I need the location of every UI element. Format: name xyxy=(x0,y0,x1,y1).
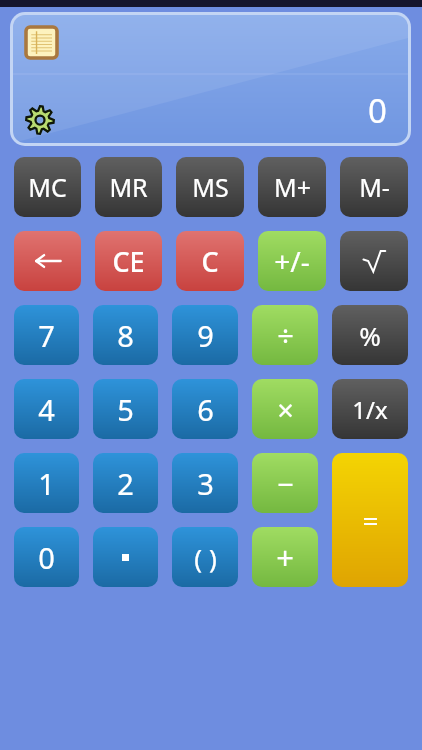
button[interactable]: 3 xyxy=(172,453,238,513)
button[interactable]: 4 xyxy=(14,379,79,439)
button[interactable]: − xyxy=(252,453,318,513)
staticText: 0 xyxy=(368,88,387,133)
button[interactable]: Settings xyxy=(25,105,55,135)
staticText: 2 xyxy=(117,464,134,503)
button[interactable]: Decimal point xyxy=(93,527,158,587)
staticText: M- xyxy=(359,170,390,204)
staticText: MC xyxy=(28,170,67,204)
button[interactable]: +/- xyxy=(258,231,326,291)
staticText: ( ) xyxy=(194,540,217,575)
button[interactable]: 5 xyxy=(93,379,158,439)
button[interactable]: Notes xyxy=(13,15,408,143)
button[interactable]: ÷ xyxy=(252,305,318,365)
staticText: CE xyxy=(112,243,145,280)
button[interactable]: = xyxy=(332,453,408,587)
staticText: 0 xyxy=(38,538,55,577)
staticText: MR xyxy=(109,170,148,204)
staticText: 4 xyxy=(38,390,55,429)
staticText: M+ xyxy=(274,170,311,204)
button[interactable]: % xyxy=(332,305,408,365)
button[interactable]: M+ xyxy=(258,157,326,217)
staticText: 1/x xyxy=(352,393,388,426)
staticText: 1 xyxy=(38,464,55,503)
button[interactable]: MC xyxy=(14,157,81,217)
button[interactable]: × xyxy=(252,379,318,439)
staticText: 7 xyxy=(38,316,55,355)
staticText: % xyxy=(359,318,381,353)
staticText: = xyxy=(362,501,379,539)
staticText: 8 xyxy=(117,316,134,355)
staticText: + xyxy=(276,536,294,578)
staticText: 3 xyxy=(197,464,214,503)
staticText: × xyxy=(277,390,294,429)
button[interactable]: 1 xyxy=(14,453,79,513)
button[interactable]: M- xyxy=(340,157,408,217)
button[interactable]: Backspace xyxy=(14,231,81,291)
staticText: 9 xyxy=(197,316,214,355)
button[interactable]: Notes xyxy=(26,27,57,58)
button[interactable]: + xyxy=(252,527,318,587)
button[interactable]: 1/x xyxy=(332,379,408,439)
button[interactable]: C xyxy=(176,231,244,291)
button[interactable]: ( ) xyxy=(172,527,238,587)
button[interactable]: 7 xyxy=(14,305,79,365)
button[interactable]: MR xyxy=(95,157,162,217)
staticText: − xyxy=(277,464,294,503)
staticText: ÷ xyxy=(277,316,294,355)
button[interactable]: 8 xyxy=(93,305,158,365)
staticText: MS xyxy=(192,170,229,204)
staticText: +/- xyxy=(274,242,310,280)
button[interactable]: 9 xyxy=(172,305,238,365)
button[interactable]: CE xyxy=(95,231,162,291)
button[interactable]: MS xyxy=(176,157,244,217)
button[interactable]: Square root xyxy=(340,231,408,291)
staticText: 5 xyxy=(117,390,134,429)
button[interactable]: 6 xyxy=(172,379,238,439)
button[interactable]: 0 xyxy=(14,527,79,587)
staticText: 6 xyxy=(197,390,214,429)
staticText: C xyxy=(201,243,219,280)
button[interactable]: 2 xyxy=(93,453,158,513)
